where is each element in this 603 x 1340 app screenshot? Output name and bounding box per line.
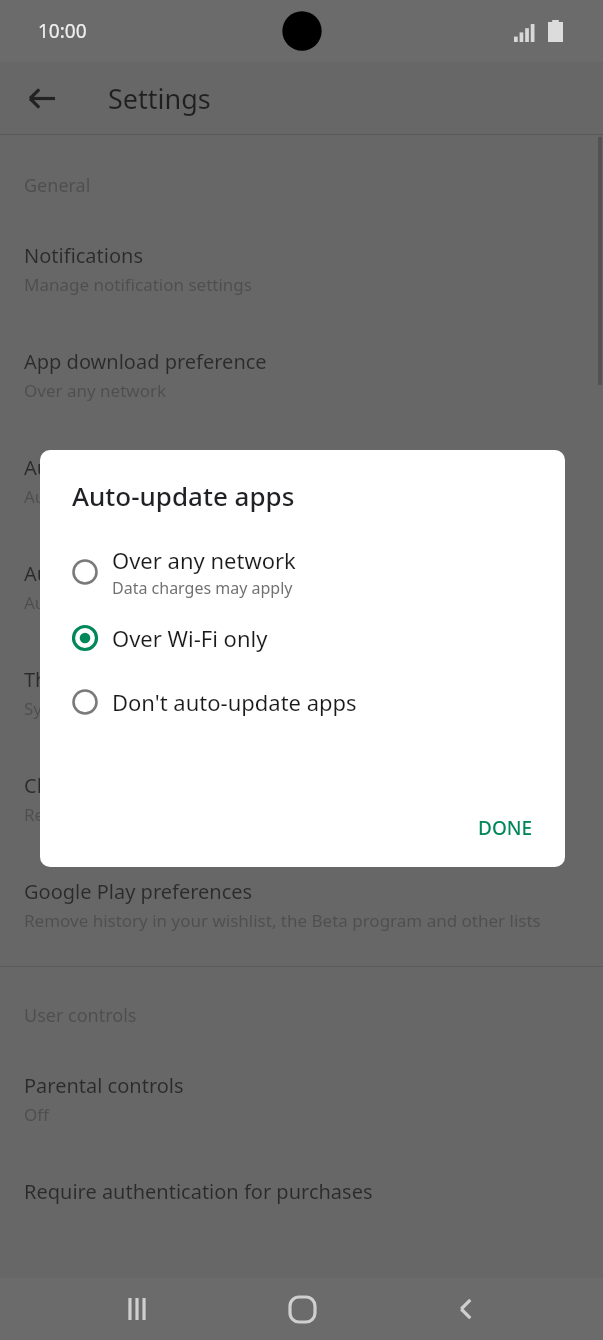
staticText: Require authentication for purchases	[24, 1178, 373, 1205]
staticText: Notifications	[24, 242, 143, 269]
staticText: Settings	[108, 80, 211, 117]
staticText: Off	[24, 1103, 49, 1126]
button[interactable]: App download preference	[0, 348, 603, 402]
staticText: General	[24, 173, 91, 198]
staticText: Auto-update apps	[72, 478, 295, 513]
button[interactable]: Home	[274, 1281, 330, 1337]
staticText: Don't auto-update apps	[112, 687, 357, 717]
staticText: Removes searches you've made on this dev…	[24, 803, 391, 826]
staticText: System default	[24, 697, 143, 720]
staticText: 10:00	[38, 18, 87, 44]
button[interactable]: Auto-play videos	[0, 560, 603, 614]
button[interactable]: Back	[438, 1281, 494, 1337]
staticText: Manage notification settings	[24, 273, 252, 296]
staticText: Over Wi-Fi only	[112, 623, 268, 653]
staticText: App download preference	[24, 348, 267, 375]
staticText: Over any network	[24, 379, 167, 402]
button[interactable]: Back	[16, 72, 68, 124]
button[interactable]: Clear local search history	[0, 772, 603, 826]
staticText: Auto-play videos	[24, 560, 180, 587]
staticText: Google Play preferences	[24, 878, 253, 905]
button[interactable]: Recents	[109, 1281, 165, 1337]
staticText: Remove history in your wishlist, the Bet…	[24, 909, 541, 932]
staticText: Theme	[24, 666, 89, 693]
button[interactable]: Require authentication for purchases	[0, 1178, 603, 1205]
staticText: Over any network	[112, 545, 296, 575]
button[interactable]: Over any network	[40, 539, 565, 605]
button[interactable]: Notifications	[0, 242, 603, 296]
staticText: Auto-update apps over Wi-Fi only	[24, 485, 289, 508]
button[interactable]: DONE	[460, 803, 551, 853]
staticText: Auto-update apps	[24, 454, 193, 481]
staticText: Data charges may apply	[112, 577, 293, 599]
button[interactable]: Don't auto-update apps	[40, 681, 565, 723]
staticText: Parental controls	[24, 1072, 184, 1099]
staticText: User controls	[24, 1003, 137, 1028]
staticText: Clear local search history	[24, 772, 259, 799]
button[interactable]: Parental controls	[0, 1072, 603, 1126]
button[interactable]: Theme	[0, 666, 603, 720]
staticText: Auto-play videos over Wi-Fi only	[24, 591, 278, 614]
button[interactable]: Auto-update apps	[0, 454, 603, 508]
staticText: DONE	[478, 815, 533, 841]
button[interactable]: Over Wi-Fi only	[40, 617, 565, 659]
button[interactable]: Google Play preferences	[0, 878, 603, 932]
